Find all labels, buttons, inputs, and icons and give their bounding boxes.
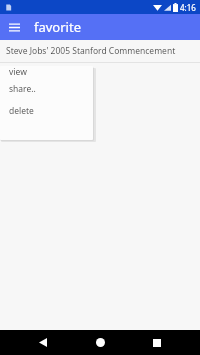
button[interactable]: Steve Jobs' 2005 Stanford Commencement A…: [0, 40, 200, 63]
button[interactable]: share..: [0, 78, 93, 100]
button[interactable]: delete: [0, 100, 93, 122]
button[interactable]: Open navigation drawer: [5, 18, 24, 37]
staticText: share..: [9, 83, 36, 95]
staticText: 4:16: [180, 2, 196, 13]
staticText: delete: [9, 105, 34, 117]
staticText: favorite: [34, 18, 81, 36]
button[interactable]: Home: [86, 330, 114, 355]
button[interactable]: Back: [29, 330, 57, 355]
staticText: view: [9, 66, 27, 78]
button[interactable]: view: [0, 66, 93, 78]
button[interactable]: Recent apps: [143, 330, 171, 355]
staticText: Steve Jobs' 2005 Stanford Commencement A…: [6, 45, 194, 57]
